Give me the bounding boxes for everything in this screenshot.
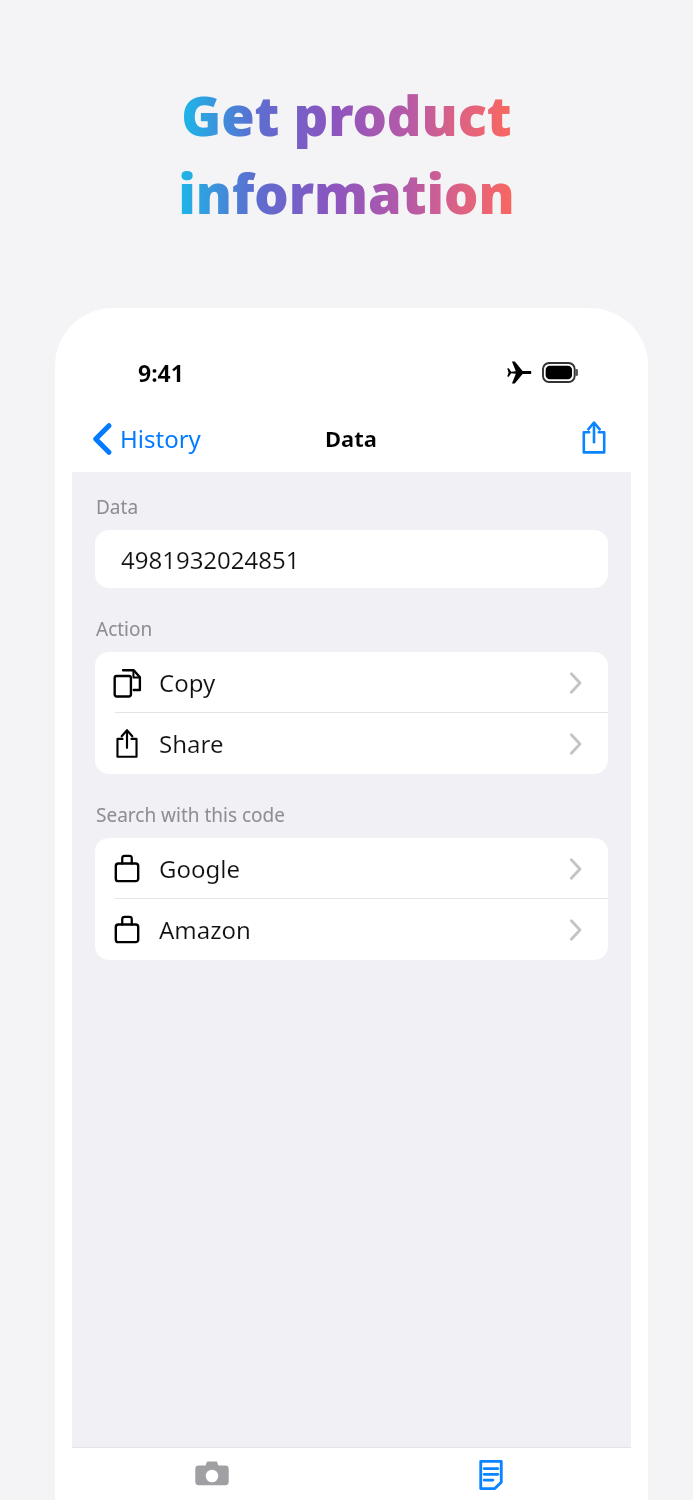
staticText: Action	[96, 616, 153, 642]
staticText: Google	[159, 852, 240, 885]
button[interactable]: History	[72, 416, 213, 461]
staticText: 4981932024851	[121, 543, 300, 576]
button[interactable]: Google	[95, 838, 608, 899]
staticText: Copy	[159, 666, 216, 699]
staticText: Search with this code	[96, 802, 286, 828]
button[interactable]: Share	[567, 414, 631, 462]
button[interactable]: Share	[95, 713, 608, 774]
staticText: 9:41	[138, 357, 184, 388]
staticText: information	[178, 156, 515, 230]
staticText: History	[120, 422, 201, 455]
button[interactable]: History	[351, 1448, 631, 1500]
button[interactable]: 4981932024851	[95, 530, 608, 588]
staticText: Data	[325, 423, 378, 453]
staticText: Amazon	[159, 913, 251, 946]
staticText: Share	[159, 727, 224, 760]
staticText: Data	[96, 494, 139, 520]
button[interactable]: Amazon	[95, 899, 608, 960]
button[interactable]: Scan	[72, 1448, 351, 1500]
staticText: Get product	[181, 78, 512, 152]
button[interactable]: Copy	[95, 652, 608, 713]
